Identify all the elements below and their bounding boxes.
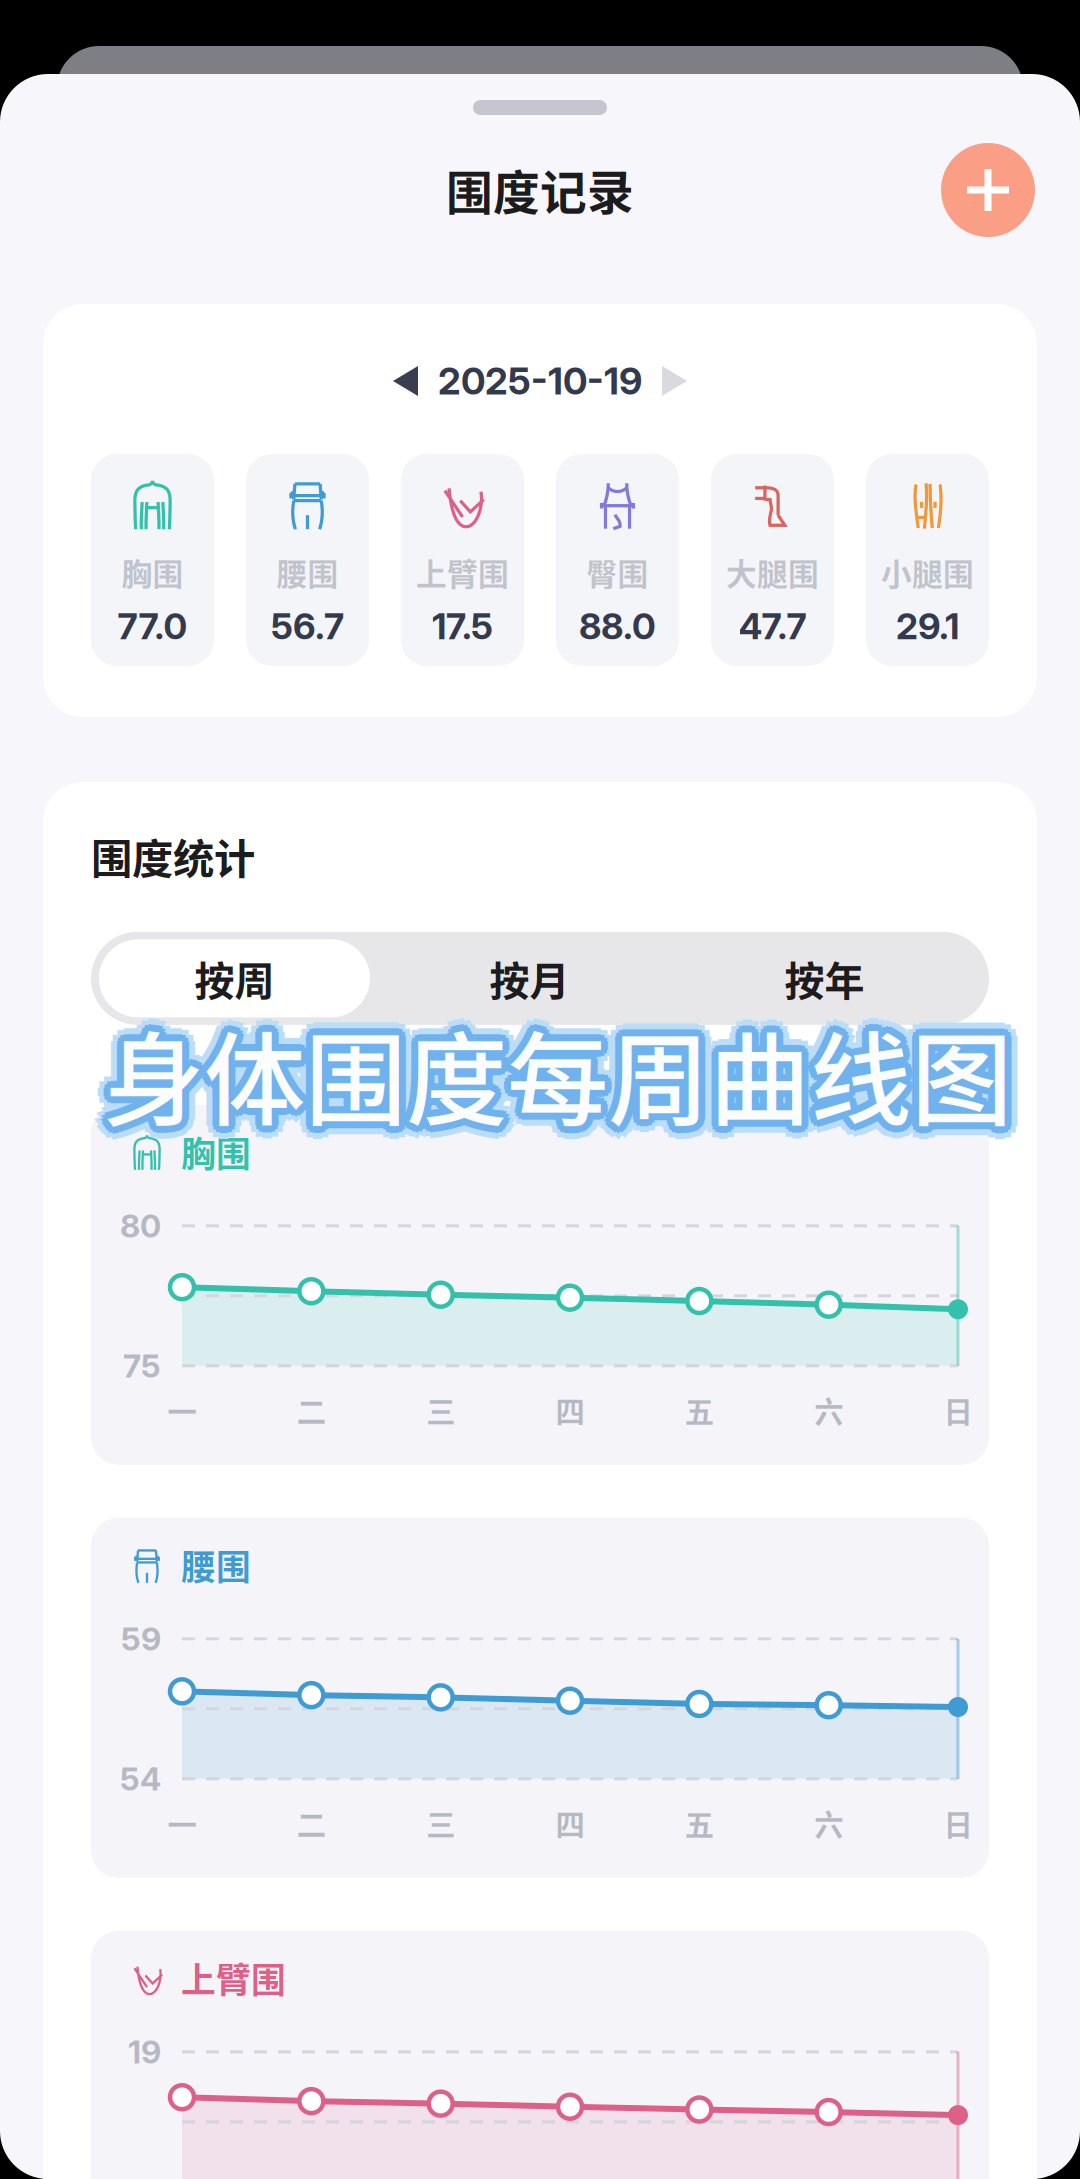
staticText: 身体围度每周曲线图 xyxy=(109,1011,1018,1158)
staticText: 胸围 xyxy=(121,550,183,594)
button[interactable]: 按月 xyxy=(394,939,665,1017)
staticText: 身体围度每周曲线图 xyxy=(96,1011,1005,1158)
staticText: 身体围度每周曲线图 xyxy=(110,1000,1019,1146)
staticText: 一 xyxy=(167,1389,196,1431)
staticText: 29.1 xyxy=(896,604,959,648)
staticText: 身体围度每周曲线图 xyxy=(109,1003,1018,1150)
staticText: 四 xyxy=(555,1802,584,1844)
staticText: 围度统计 xyxy=(91,826,255,886)
staticText: 身体围度每周曲线图 xyxy=(97,996,1006,1143)
staticText: 身体围度每周曲线图 xyxy=(114,1006,1023,1153)
staticText: 身体围度每周曲线图 xyxy=(90,1000,999,1146)
staticText: 按月 xyxy=(489,949,569,1007)
button[interactable]: 下一天 xyxy=(662,366,687,396)
staticText: 五 xyxy=(685,1389,714,1431)
staticText: 身体围度每周曲线图 xyxy=(103,987,1012,1133)
staticText: 75 xyxy=(123,1346,161,1385)
staticText: 腰围 xyxy=(276,550,338,594)
staticText: 身体围度每周曲线图 xyxy=(116,1000,1025,1146)
button[interactable]: 按周 xyxy=(99,939,370,1017)
staticText: 身体围度每周曲线图 xyxy=(103,1013,1012,1159)
staticText: 47.7 xyxy=(738,604,806,648)
staticText: 身体围度每周曲线图 xyxy=(92,993,1001,1140)
staticText: 一 xyxy=(167,1802,196,1844)
staticText: 身体围度每周曲线图 xyxy=(92,1006,1001,1153)
staticText: 88.0 xyxy=(579,604,656,648)
staticText: 六 xyxy=(814,1389,843,1431)
button[interactable]: 上一天 xyxy=(393,366,418,396)
staticText: 身体围度每周曲线图 xyxy=(97,1003,1006,1150)
staticText: 二 xyxy=(297,1802,326,1844)
staticText: 56.7 xyxy=(271,604,344,648)
staticText: 按周 xyxy=(194,949,274,1007)
staticText: 17.5 xyxy=(432,604,493,648)
staticText: 五 xyxy=(685,1802,714,1844)
staticText: 三 xyxy=(426,1389,455,1431)
staticText: 日 xyxy=(943,1389,972,1431)
staticText: 身体围度每周曲线图 xyxy=(99,994,1008,1140)
staticText: 胸围 xyxy=(181,1127,251,1177)
staticText: 身体围度每周曲线图 xyxy=(106,994,1015,1140)
staticText: 围度记录 xyxy=(446,156,634,223)
staticText: 小腿围 xyxy=(881,550,974,594)
staticText: 上臂围 xyxy=(181,1953,286,2003)
staticText: 按年 xyxy=(784,949,864,1007)
staticText: 身体围度每周曲线图 xyxy=(109,988,1018,1135)
staticText: 腰围 xyxy=(181,1540,251,1590)
staticText: 2025-10-19 xyxy=(438,358,642,404)
staticText: 三 xyxy=(426,1802,455,1844)
button[interactable]: 添加记录 xyxy=(941,143,1035,237)
button[interactable]: 大腿围 xyxy=(711,454,834,666)
button[interactable]: 腰围 xyxy=(246,454,369,666)
staticText: 身体围度每周曲线图 xyxy=(103,1000,1012,1146)
button[interactable]: 按年 xyxy=(689,939,960,1017)
staticText: 身体围度每周曲线图 xyxy=(106,1006,1015,1152)
staticText: 身体围度每周曲线图 xyxy=(96,988,1005,1135)
staticText: 臀围 xyxy=(586,550,648,594)
button[interactable]: 胸围 xyxy=(91,454,214,666)
staticText: 59 xyxy=(121,1619,161,1658)
button[interactable]: 上臂围 xyxy=(401,454,524,666)
button[interactable]: 臀围 xyxy=(556,454,679,666)
staticText: 四 xyxy=(555,1389,584,1431)
staticText: 二 xyxy=(297,1389,326,1431)
staticText: 身体围度每周曲线图 xyxy=(109,996,1018,1143)
staticText: 上臂围 xyxy=(416,550,509,594)
staticText: 身体围度每周曲线图 xyxy=(103,1007,1012,1153)
staticText: 日 xyxy=(943,1802,972,1844)
staticText: 身体围度每周曲线图 xyxy=(96,1000,1005,1146)
staticText: 身体围度每周曲线图 xyxy=(99,1006,1008,1152)
staticText: 19 xyxy=(128,2032,161,2071)
staticText: 六 xyxy=(814,1802,843,1844)
staticText: 身体围度每周曲线图 xyxy=(103,993,1012,1139)
staticText: 80 xyxy=(120,1206,161,1245)
button[interactable]: 小腿围 xyxy=(866,454,989,666)
staticText: 77.0 xyxy=(117,604,187,648)
staticText: 大腿围 xyxy=(726,550,819,594)
staticText: 身体围度每周曲线图 xyxy=(114,993,1023,1140)
staticText: 54 xyxy=(120,1759,161,1798)
